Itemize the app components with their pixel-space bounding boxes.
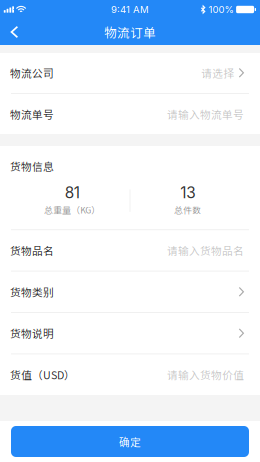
- staticText: 货物品名: [10, 243, 54, 258]
- staticText: 总重量（KG）: [44, 203, 100, 216]
- staticText: 请输入物流单号: [167, 106, 244, 122]
- staticText: 9:41 AM: [111, 4, 149, 15]
- staticText: 物流公司: [10, 65, 54, 80]
- staticText: 货物类别: [10, 284, 54, 299]
- staticText: 货值（USD）: [10, 367, 75, 382]
- button[interactable]: Back: [0, 21, 25, 43]
- button[interactable]: 物流公司: [0, 53, 260, 93]
- staticText: 货物信息: [10, 158, 54, 174]
- button[interactable]: 货物类别: [0, 272, 260, 312]
- button[interactable]: 货值（USD）: [0, 354, 260, 395]
- staticText: 请选择: [201, 65, 234, 80]
- staticText: 确定: [119, 434, 141, 449]
- staticText: 总件数: [174, 203, 201, 216]
- staticText: 物流单号: [10, 106, 54, 122]
- staticText: 货物说明: [10, 325, 54, 341]
- button[interactable]: 货物说明: [0, 313, 260, 353]
- staticText: 物流订单: [104, 23, 156, 41]
- staticText: 请输入货物价值: [167, 367, 244, 382]
- staticText: 13: [180, 183, 195, 202]
- staticText: 100%: [209, 4, 234, 15]
- button[interactable]: 确定: [11, 426, 249, 457]
- button[interactable]: 物流单号: [0, 94, 260, 134]
- button[interactable]: 货物品名: [0, 230, 260, 271]
- staticText: 请输入货物品名: [167, 243, 244, 258]
- staticText: 81: [65, 183, 80, 202]
